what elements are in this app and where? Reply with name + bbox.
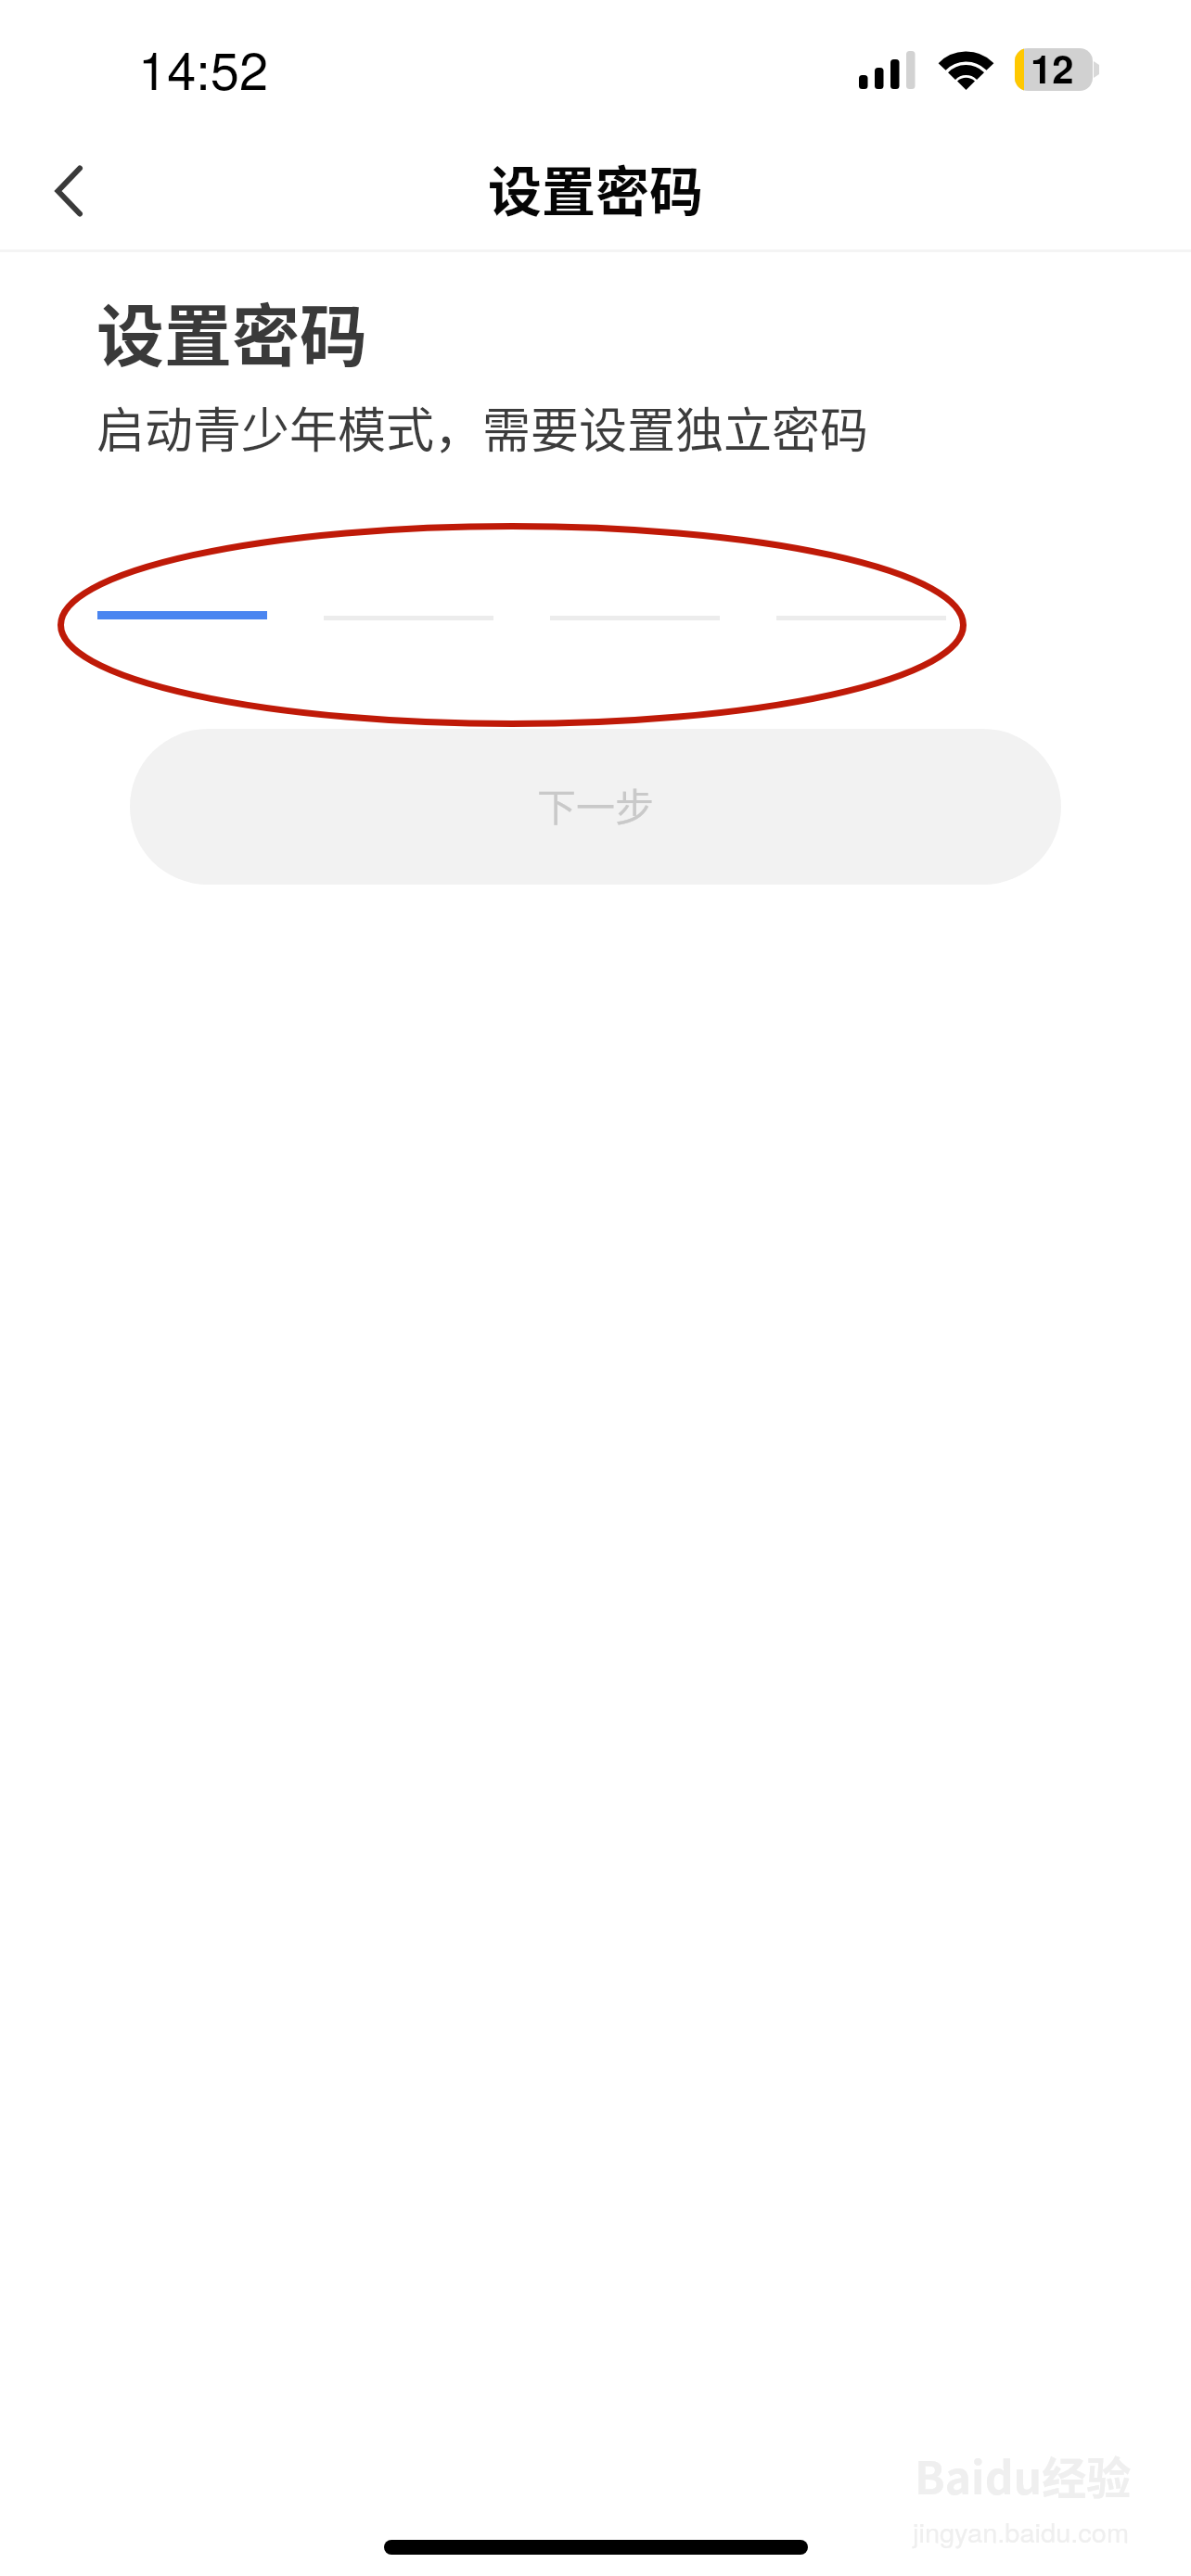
staticText: 设置密码 <box>488 149 704 227</box>
button[interactable]: Password digit 2 <box>324 556 493 677</box>
button[interactable]: 下一步 <box>130 729 1061 885</box>
staticText: 12 <box>1031 40 1074 96</box>
staticText: 下一步 <box>537 776 655 833</box>
button[interactable]: Password digit 3 <box>550 556 720 677</box>
button[interactable]: Back <box>28 150 108 230</box>
staticText: Baidu经验 <box>915 2442 1132 2507</box>
staticText: 设置密码 <box>96 282 367 380</box>
button[interactable]: Password digit 4 <box>776 556 946 677</box>
button[interactable]: Password digit 1 <box>97 556 267 677</box>
staticText: 启动青少年模式，需要设置独立密码 <box>96 392 869 462</box>
staticText: jingyan.baidu.com <box>913 2512 1130 2551</box>
staticText: 14:52 <box>138 31 269 105</box>
